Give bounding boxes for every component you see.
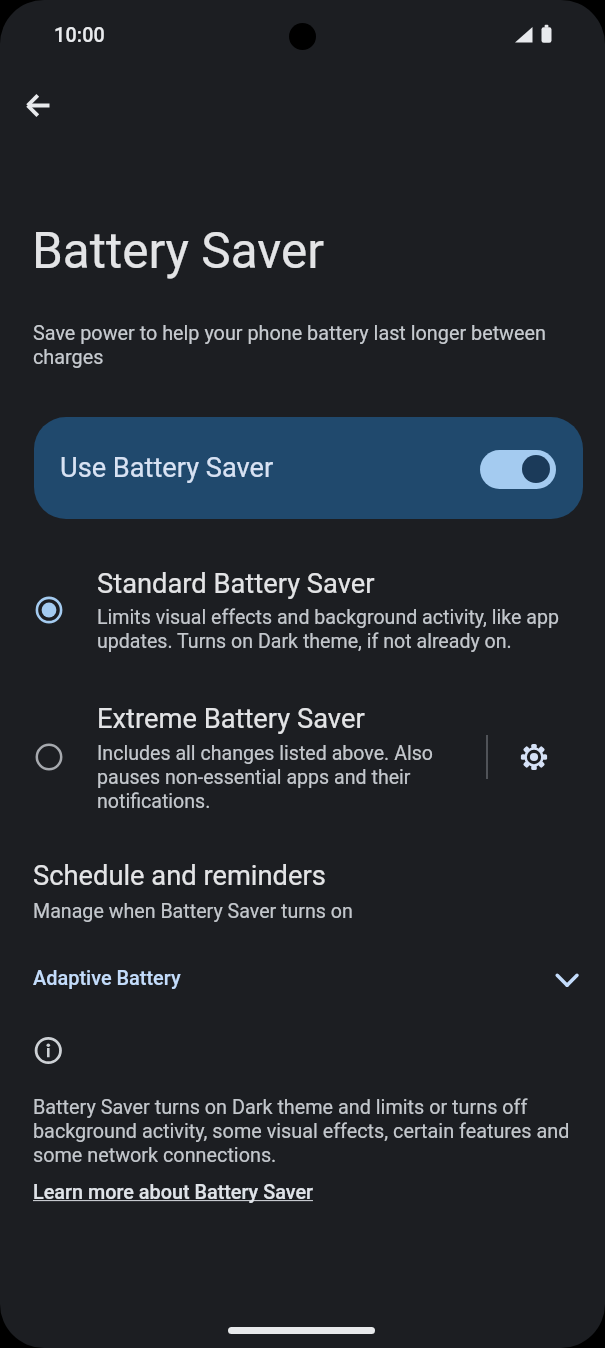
button[interactable] — [14, 82, 62, 130]
staticText: some network connections. — [33, 1144, 277, 1167]
staticText: 10:00 — [54, 24, 105, 47]
button[interactable]: Learn more about Battery Saver — [0, 0, 280, 23]
staticText: notifications. — [97, 790, 211, 813]
staticText: Extreme Battery Saver — [97, 703, 365, 735]
staticText: Manage when Battery Saver turns on — [33, 900, 353, 923]
button[interactable] — [510, 733, 558, 781]
staticText: Battery Saver turns on Dark theme and li… — [33, 1096, 528, 1119]
staticText: Limits visual effects and background act… — [97, 606, 560, 629]
button[interactable] — [480, 450, 556, 489]
staticText: charges — [33, 346, 104, 369]
button[interactable] — [0, 693, 486, 823]
button[interactable] — [0, 945, 605, 1015]
staticText: updates. Turns on Dark theme, if not alr… — [97, 630, 512, 653]
button[interactable] — [34, 417, 583, 519]
button[interactable] — [0, 558, 605, 670]
staticText: Standard Battery Saver — [97, 568, 375, 600]
staticText: background activity, some visual effects… — [33, 1120, 570, 1143]
staticText: pauses non-essential apps and their — [97, 766, 411, 789]
staticText: Adaptive Battery — [33, 967, 181, 990]
staticText: Schedule and reminders — [33, 860, 326, 892]
staticText: Battery Saver — [32, 222, 324, 280]
staticText: Use Battery Saver — [60, 452, 274, 484]
staticText: Save power to help your phone battery la… — [33, 322, 546, 345]
staticText: Includes all changes listed above. Also — [97, 742, 433, 765]
